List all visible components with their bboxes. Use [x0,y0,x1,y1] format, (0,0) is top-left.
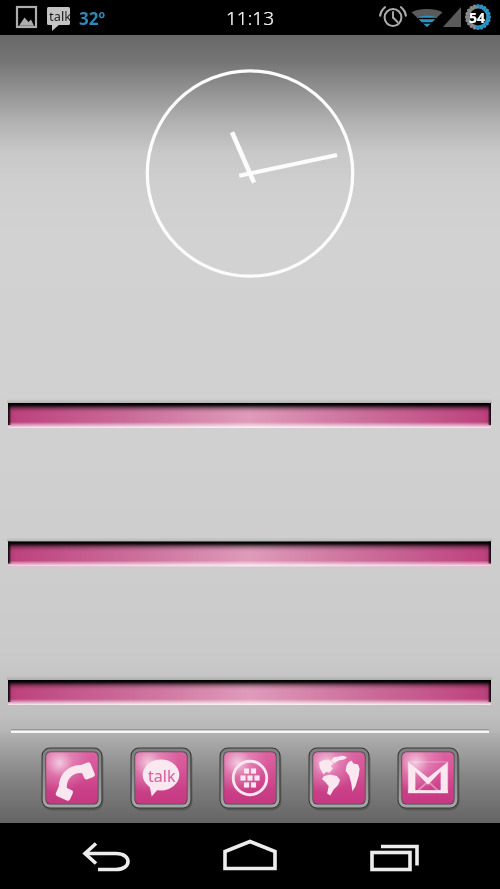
button[interactable]: Messenger [129,746,194,811]
button[interactable]: Apps [218,746,283,811]
button[interactable]: Recent apps [333,823,500,889]
button[interactable]: Home [166,823,333,889]
button[interactable]: Back [0,823,166,889]
button[interactable]: Gmail [396,746,461,811]
button[interactable]: Phone [40,746,105,811]
staticText: 32º [79,7,106,30]
staticText: talk [148,765,176,787]
staticText: 11:13 [226,5,275,31]
staticText: talk [49,8,72,25]
staticText: 54 [469,8,486,27]
button[interactable]: Browser [307,746,372,811]
